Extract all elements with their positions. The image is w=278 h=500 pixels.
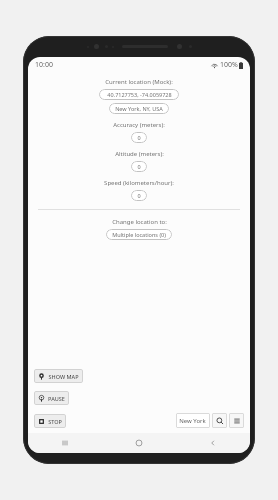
button[interactable]: 0 — [131, 161, 147, 172]
staticText: 40.7127753, -74.0059728 — [107, 91, 172, 98]
button[interactable]: 40.7127753, -74.0059728 — [99, 89, 179, 100]
button[interactable]: Back — [176, 433, 250, 453]
staticText: 100% — [220, 60, 238, 70]
button[interactable]: New York — [176, 413, 210, 428]
button[interactable]: New York, NY, USA — [109, 103, 169, 114]
button[interactable]: 0 — [131, 132, 147, 143]
button[interactable]: Recent apps — [28, 433, 102, 453]
button[interactable]: PAUSE — [34, 391, 69, 405]
staticText: Change location to: — [112, 218, 167, 226]
button[interactable]: Home — [102, 433, 176, 453]
button[interactable]: Multiple locations (0) — [106, 229, 172, 240]
button[interactable]: Menu — [229, 413, 244, 428]
staticText: 0 — [137, 163, 141, 170]
staticText: 0 — [137, 134, 141, 141]
staticText: 10:00 — [35, 60, 53, 70]
button[interactable]: SHOW MAP — [34, 369, 83, 383]
staticText: New York — [179, 417, 206, 425]
button[interactable]: Search — [212, 413, 227, 428]
staticText: STOP — [48, 418, 62, 425]
staticText: PAUSE — [48, 395, 65, 402]
staticText: SHOW MAP — [48, 373, 79, 380]
staticText: Multiple locations (0) — [112, 231, 166, 238]
button[interactable]: 0 — [131, 190, 147, 201]
staticText: Altitude (meters): — [115, 150, 164, 158]
staticText: 0 — [137, 192, 141, 199]
staticText: Current location (Mock): — [105, 78, 173, 86]
staticText: Accuracy (meters): — [113, 121, 165, 129]
staticText: Speed (kilometers/hour): — [104, 179, 174, 187]
button[interactable]: STOP — [34, 414, 66, 428]
staticText: New York, NY, USA — [115, 105, 163, 112]
